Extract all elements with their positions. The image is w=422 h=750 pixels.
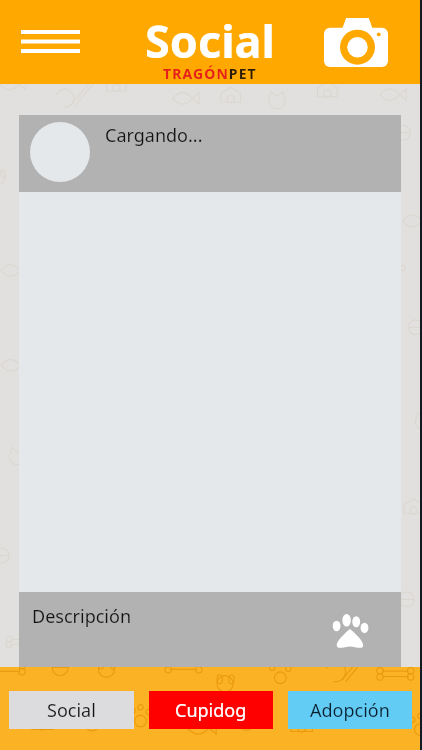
staticText: Cupidog	[175, 698, 247, 723]
staticText: Adopción	[310, 698, 390, 723]
button[interactable]: Cupidog	[149, 691, 273, 729]
button[interactable]: Social	[9, 691, 134, 729]
button[interactable]: Adopción	[288, 691, 412, 729]
staticText: TRAGÓNPET	[163, 64, 257, 83]
button[interactable]: Camera	[319, 12, 393, 72]
button[interactable]: Menu	[13, 14, 88, 68]
staticText: Cargando...	[105, 123, 203, 148]
button[interactable]: Like	[328, 610, 372, 654]
staticText: Social	[145, 10, 275, 71]
staticText: Social	[47, 698, 96, 723]
staticText: Descripción	[32, 604, 131, 629]
